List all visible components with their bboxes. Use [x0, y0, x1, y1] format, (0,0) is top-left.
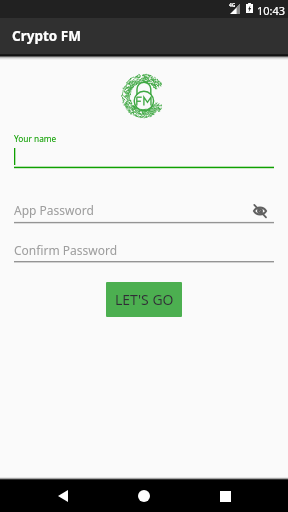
- button[interactable]: App Password: [14, 202, 254, 223]
- button[interactable]: Recents: [209, 480, 241, 512]
- staticText: 10:43: [257, 3, 286, 18]
- staticText: Your name: [14, 133, 57, 144]
- staticText: Confirm Password: [14, 242, 118, 258]
- staticText: 4G: [229, 2, 236, 9]
- button[interactable]: LET'S GO: [106, 282, 182, 317]
- button[interactable]: Back: [47, 480, 79, 512]
- staticText: App Password: [14, 202, 94, 218]
- button[interactable]: Toggle password visibility: [248, 199, 272, 223]
- staticText: Crypto FM: [12, 27, 81, 45]
- button[interactable]: Confirm Password: [14, 242, 274, 263]
- staticText: LET'S GO: [115, 290, 174, 309]
- button[interactable]: Home: [128, 480, 160, 512]
